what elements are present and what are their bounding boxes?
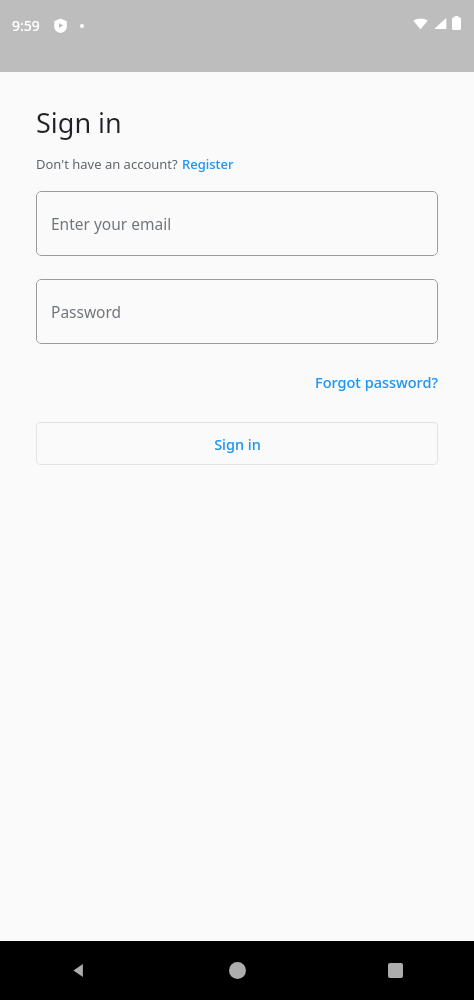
button[interactable]: Forgot password?: [315, 372, 438, 392]
staticText: Enter your email: [51, 213, 172, 234]
button[interactable]: Sign in: [36, 422, 438, 465]
button[interactable]: Register: [182, 155, 234, 173]
staticText: Sign in: [36, 104, 122, 141]
staticText: Register: [182, 155, 234, 173]
button[interactable]: Recent apps: [316, 941, 474, 1000]
button[interactable]: Password: [36, 279, 438, 344]
button[interactable]: Enter your email: [36, 191, 438, 256]
button[interactable]: Back: [0, 941, 158, 1000]
staticText: Sign in: [214, 434, 261, 454]
staticText: Don't have an account?: [36, 155, 182, 173]
button[interactable]: Home: [158, 941, 316, 1000]
staticText: Password: [51, 301, 122, 322]
staticText: Forgot password?: [315, 372, 438, 392]
staticText: 9:59: [12, 16, 40, 35]
